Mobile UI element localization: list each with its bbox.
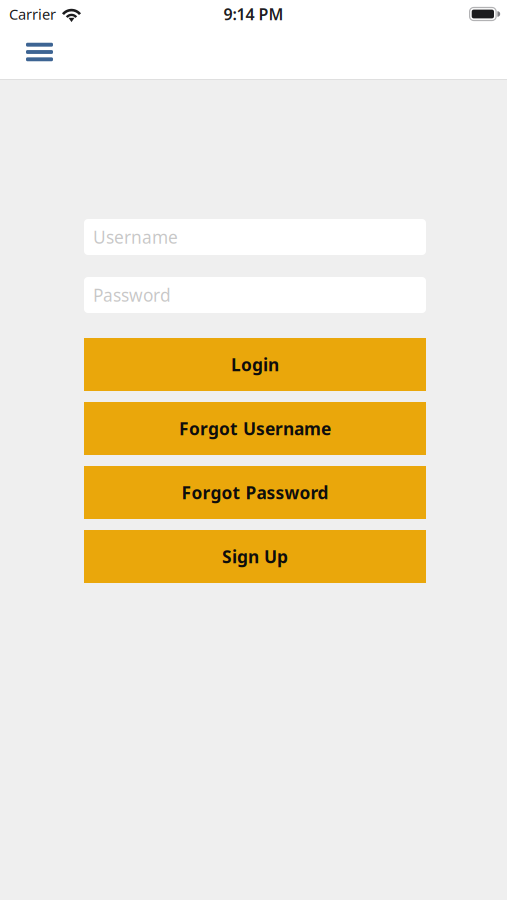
button[interactable]: Menu bbox=[17, 32, 61, 76]
staticText: 9:14 PM bbox=[223, 3, 283, 25]
button[interactable]: Sign Up bbox=[84, 530, 426, 583]
staticText: Login bbox=[231, 353, 279, 376]
button[interactable]: Password bbox=[84, 277, 426, 313]
button[interactable]: Forgot Username bbox=[84, 402, 426, 455]
staticText: Forgot Username bbox=[179, 417, 331, 440]
staticText: Forgot Password bbox=[181, 481, 328, 504]
staticText: Sign Up bbox=[222, 545, 288, 568]
button[interactable]: Forgot Password bbox=[84, 466, 426, 519]
button[interactable]: Login bbox=[84, 338, 426, 391]
staticText: Carrier bbox=[9, 4, 56, 24]
staticText: Password bbox=[93, 283, 171, 306]
button[interactable]: Username bbox=[84, 219, 426, 255]
staticText: Username bbox=[93, 225, 178, 248]
